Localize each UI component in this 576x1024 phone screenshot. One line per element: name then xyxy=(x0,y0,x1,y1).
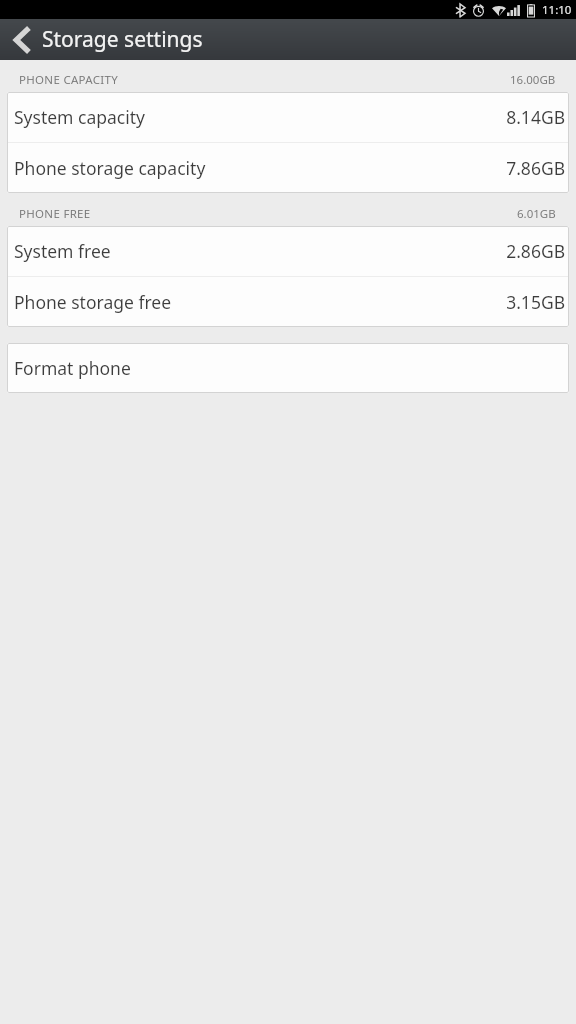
staticText: 16.00GB xyxy=(510,72,556,88)
staticText: 7.86GB xyxy=(506,156,565,180)
button[interactable]: Format phone xyxy=(7,343,569,393)
button[interactable]: Phone storage capacity xyxy=(7,143,569,193)
staticText: PHONE CAPACITY xyxy=(19,72,118,88)
button[interactable]: Phone storage free xyxy=(7,277,569,327)
staticText: PHONE FREE xyxy=(19,206,91,222)
staticText: Phone storage free xyxy=(14,290,172,314)
staticText: 8.14GB xyxy=(506,105,565,129)
staticText: Phone storage capacity xyxy=(14,156,206,180)
staticText: Storage settings xyxy=(42,25,203,54)
button[interactable]: System capacity xyxy=(7,92,569,142)
staticText: 3.15GB xyxy=(506,290,565,314)
staticText: Format phone xyxy=(14,356,131,380)
button[interactable]: Back xyxy=(0,19,42,60)
button[interactable]: System free xyxy=(7,226,569,276)
staticText: System capacity xyxy=(14,105,145,129)
staticText: System free xyxy=(14,239,111,263)
staticText: 6.01GB xyxy=(517,206,556,222)
staticText: 11:10 xyxy=(542,2,572,18)
staticText: 2.86GB xyxy=(506,239,565,263)
